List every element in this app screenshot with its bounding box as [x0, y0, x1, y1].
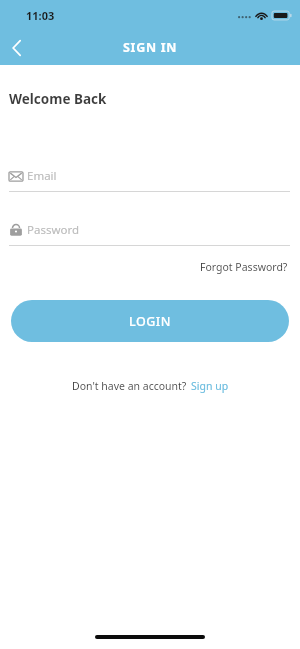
button[interactable]: LOGIN — [11, 300, 289, 342]
staticText: Sign up — [191, 379, 229, 393]
staticText: Password — [27, 222, 290, 238]
button[interactable]: Back — [0, 31, 34, 65]
staticText: Welcome Back — [9, 90, 107, 108]
button[interactable]: Password — [0, 222, 300, 246]
staticText: 11:03 — [26, 8, 55, 23]
staticText: Don't have an account? — [72, 379, 187, 393]
staticText: SIGN IN — [123, 39, 178, 56]
staticText: LOGIN — [129, 313, 171, 330]
staticText: Forgot Password? — [200, 260, 288, 274]
staticText: Email — [27, 168, 290, 184]
button[interactable]: Forgot Password? — [198, 258, 290, 276]
button[interactable]: Email — [0, 168, 300, 192]
button[interactable]: Sign up — [191, 379, 229, 393]
